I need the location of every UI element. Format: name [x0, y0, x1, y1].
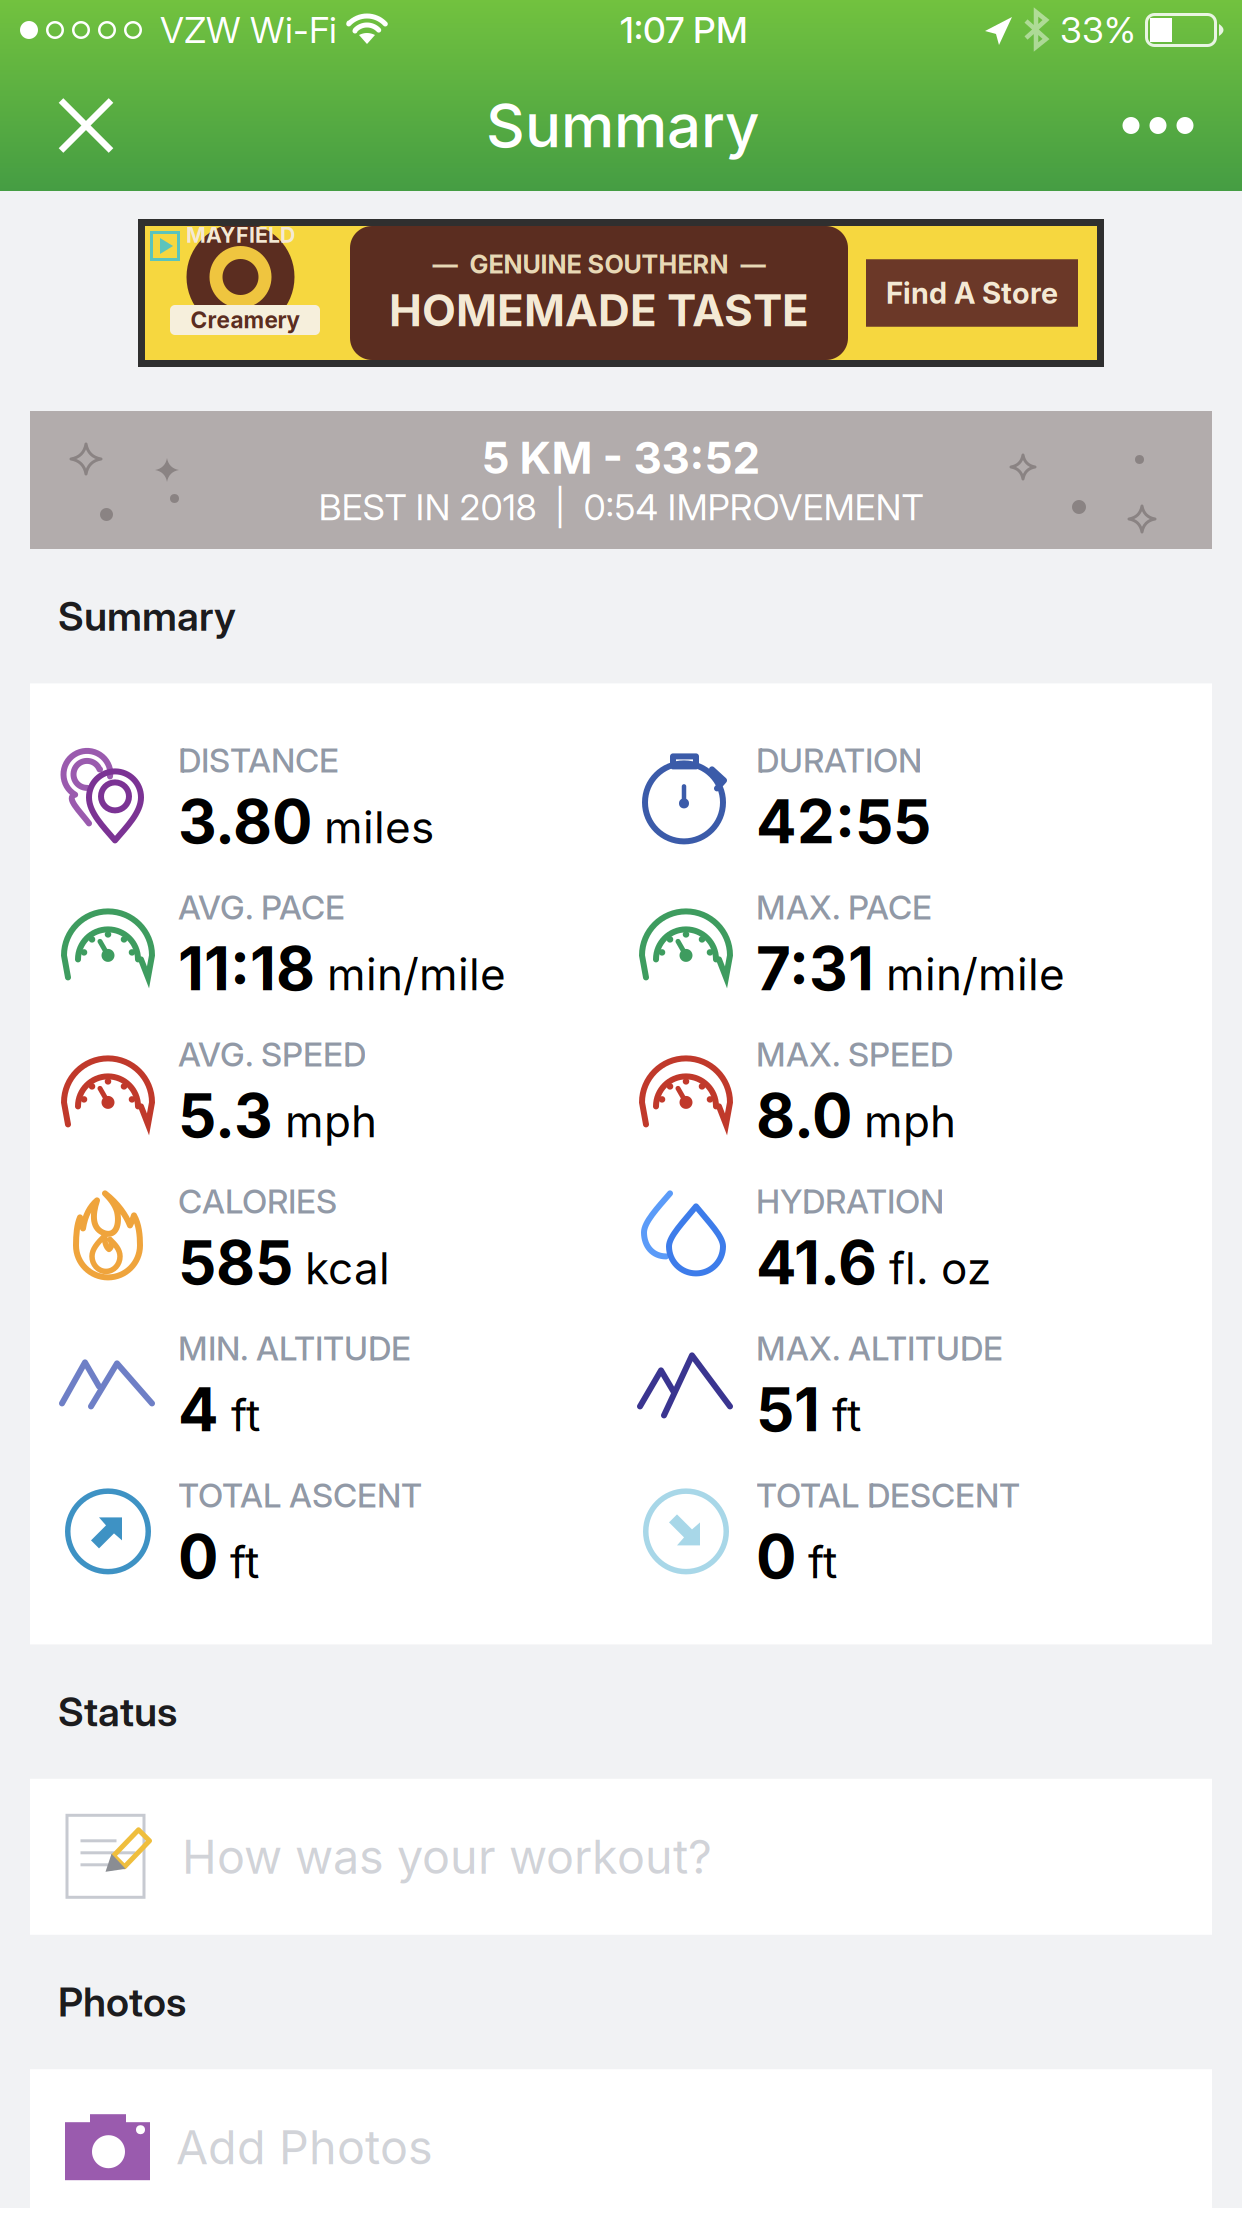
staticText: MAX. PACE	[756, 887, 932, 927]
staticText: 5 KM - 33:52	[481, 431, 760, 484]
staticText: MAX. ALTITUDE	[756, 1328, 1003, 1368]
button[interactable]: How was your workout?	[0, 1779, 1242, 1935]
staticText: 1:07 PM	[620, 8, 748, 52]
button[interactable]: More options	[1092, 60, 1224, 191]
staticText: HOMEMADE TASTE	[389, 284, 809, 337]
staticText: mph	[285, 1095, 377, 1148]
staticText: TOTAL ASCENT	[178, 1475, 422, 1515]
staticText: Creamery	[190, 306, 299, 334]
staticText: 0	[178, 1520, 218, 1593]
staticText: 11:18	[178, 932, 315, 1005]
button[interactable]: Advertisement	[138, 191, 1104, 397]
staticText: Add Photos	[176, 2119, 433, 2175]
staticText: CALORIES	[178, 1181, 337, 1221]
staticText: 42:55	[756, 785, 931, 858]
staticText: 585	[178, 1226, 293, 1299]
staticText: MIN. ALTITUDE	[178, 1328, 411, 1368]
staticText: MAYFIELD	[186, 222, 295, 248]
staticText: DISTANCE	[178, 740, 339, 780]
staticText: AVG. PACE	[178, 887, 345, 927]
staticText: BEST IN 2018 | 0:54 IMPROVEMENT	[318, 485, 923, 529]
staticText: 0	[756, 1520, 796, 1593]
button[interactable]: Close	[18, 60, 154, 191]
staticText: Status	[58, 1687, 177, 1736]
staticText: Photos	[58, 1978, 186, 2026]
staticText: min/mile	[886, 948, 1065, 1001]
staticText: 41.6	[756, 1226, 877, 1299]
staticText: TOTAL DESCENT	[756, 1475, 1020, 1515]
staticText: DURATION	[756, 740, 922, 780]
staticText: ft	[808, 1536, 837, 1589]
staticText: AVG. SPEED	[178, 1034, 366, 1074]
staticText: ft	[230, 1536, 259, 1589]
staticText: 7:31	[756, 932, 874, 1005]
staticText: fl. oz	[889, 1242, 991, 1295]
staticText: 4	[178, 1373, 219, 1446]
staticText: mph	[864, 1095, 956, 1148]
staticText: Summary	[486, 89, 760, 162]
staticText: 51	[756, 1373, 820, 1446]
staticText: HYDRATION	[756, 1181, 944, 1221]
button[interactable]: Add Photos	[0, 2069, 1242, 2225]
staticText: VZW Wi-Fi	[142, 8, 346, 52]
staticText: 33%	[1060, 8, 1145, 52]
staticText: kcal	[305, 1242, 390, 1295]
staticText: 8.0	[756, 1079, 852, 1152]
staticText: min/mile	[327, 948, 506, 1001]
staticText: How was your workout?	[182, 1829, 712, 1885]
staticText: — GENUINE SOUTHERN —	[432, 249, 765, 280]
staticText: miles	[324, 801, 434, 854]
staticText: Summary	[58, 592, 236, 640]
staticText: Find A Store	[886, 275, 1058, 311]
staticText: 5.3	[178, 1079, 273, 1152]
staticText: MAX. SPEED	[756, 1034, 953, 1074]
staticText: ft	[231, 1389, 260, 1442]
staticText: 3.80	[178, 785, 312, 858]
staticText: ft	[832, 1389, 861, 1442]
